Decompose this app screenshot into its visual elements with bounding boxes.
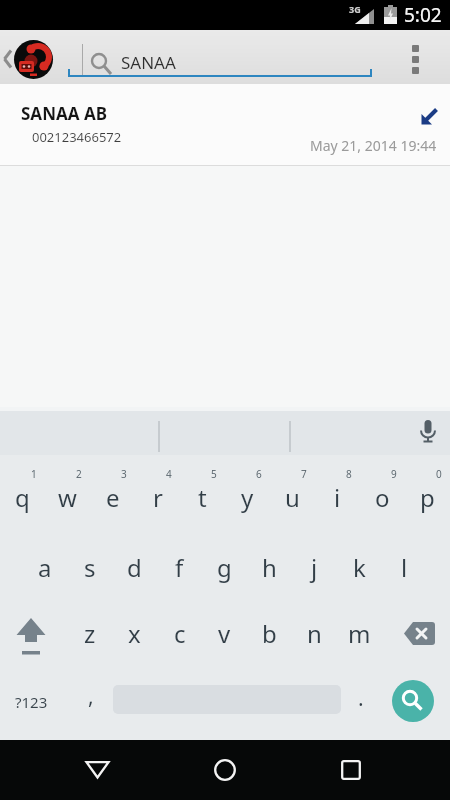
button[interactable] [398,37,432,81]
button[interactable]: t [180,465,225,529]
button[interactable]: u [270,465,315,529]
staticText: l [401,551,408,584]
staticText: j [311,551,318,584]
staticText: 7 [301,467,307,481]
staticText: , [88,682,94,711]
button[interactable]: o [360,465,405,529]
staticText: n [307,617,322,650]
button[interactable]: i [315,465,360,529]
staticText: May 21, 2014 19:44 [310,136,437,155]
button[interactable]: SANAA [86,38,376,80]
button[interactable]: q [0,465,45,529]
staticText: 002123466572 [32,128,122,146]
staticText: ?123 [15,692,48,712]
staticText: b [262,617,277,650]
button[interactable]: h [247,535,292,599]
staticText: 2 [76,467,82,481]
staticText: w [58,481,77,514]
button[interactable]: SANAA AB [0,84,450,166]
button[interactable]: a [22,535,67,599]
staticText: SANAA AB [21,102,107,125]
button[interactable]: z [67,601,112,665]
button[interactable]: g [202,535,247,599]
button[interactable]: p [405,465,450,529]
staticText: t [198,481,207,514]
button[interactable] [67,748,127,792]
staticText: o [375,481,390,514]
staticText: c [174,617,186,650]
staticText: 0 [436,467,442,481]
button[interactable]: m [337,601,382,665]
staticText: . [358,684,364,713]
staticText: 5 [211,467,217,481]
staticText: g [217,551,232,584]
staticText: u [285,481,300,514]
button[interactable]: w [45,465,90,529]
staticText: m [348,617,371,650]
button[interactable]: c [157,601,202,665]
button[interactable]: x [112,601,157,665]
staticText: 1 [31,467,37,481]
staticText: 3G [349,3,361,15]
staticText: f [175,551,184,584]
button[interactable]: d [112,535,157,599]
staticText: x [128,617,141,650]
staticText: 3 [121,467,127,481]
button[interactable]: v [202,601,247,665]
staticText: 9 [391,467,397,481]
button[interactable]: j [292,535,337,599]
button[interactable]: k [337,535,382,599]
staticText: v [218,617,231,650]
staticText: r [153,481,163,514]
staticText: 6 [256,467,262,481]
button[interactable]: n [292,601,337,665]
staticText: k [353,551,366,584]
staticText: q [15,481,30,514]
button[interactable] [195,748,255,792]
button[interactable]: l [382,535,427,599]
button[interactable]: y [225,465,270,529]
button[interactable]: , [68,670,113,734]
button[interactable] [408,413,448,453]
staticText: s [84,551,96,584]
button[interactable] [388,601,450,665]
staticText: i [334,481,341,514]
staticText: SANAA [121,51,176,74]
staticText: h [262,551,277,584]
button[interactable]: . [338,670,383,734]
button[interactable] [321,748,381,792]
staticText: z [84,617,96,650]
button[interactable]: s [67,535,112,599]
staticText: e [106,481,120,514]
button[interactable] [0,32,60,82]
button[interactable] [392,680,434,722]
button[interactable]: f [157,535,202,599]
staticText: y [241,481,254,514]
button[interactable]: b [247,601,292,665]
staticText: 5:02 [404,2,442,28]
button[interactable]: ?123 [0,670,62,734]
button[interactable]: e [90,465,135,529]
button[interactable] [0,601,62,665]
staticText: 4 [166,467,172,481]
staticText: d [127,551,142,584]
staticText: p [420,481,435,514]
staticText: a [38,551,52,584]
staticText: 8 [346,467,352,481]
button[interactable]: r [135,465,180,529]
